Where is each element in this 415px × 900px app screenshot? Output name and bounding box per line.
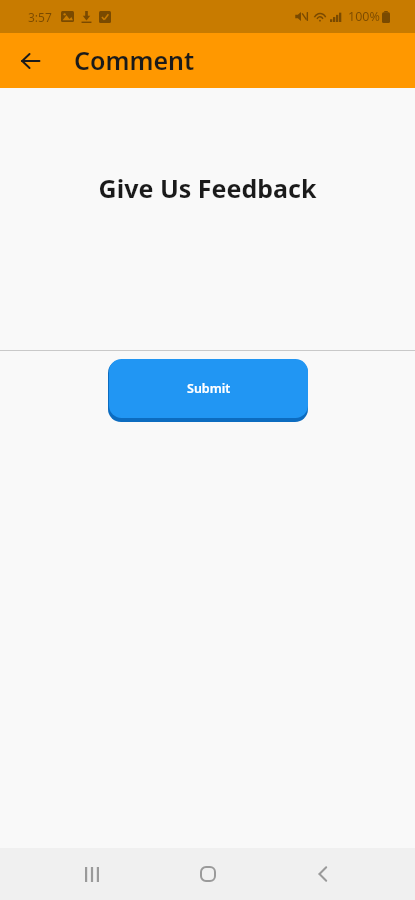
staticText: Submit — [187, 380, 231, 397]
button[interactable]: Home — [184, 850, 232, 898]
staticText: 100% — [348, 8, 380, 25]
button[interactable]: Submit — [109, 359, 308, 418]
staticText: 3:57 — [28, 9, 52, 25]
button[interactable]: Recents — [68, 850, 116, 898]
button[interactable]: Back — [299, 850, 347, 898]
button[interactable]: Back — [10, 41, 50, 81]
staticText: Comment — [74, 43, 195, 77]
staticText: Give Us Feedback — [0, 171, 415, 205]
